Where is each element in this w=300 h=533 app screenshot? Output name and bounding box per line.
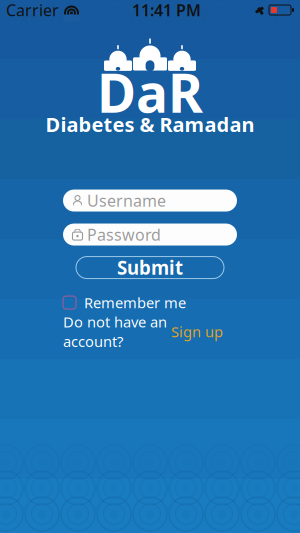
button[interactable]: Remember me [63,294,237,312]
staticText: Sign up [171,322,223,341]
button[interactable]: Username [63,190,237,212]
staticText: Remember me [84,293,186,312]
button[interactable]: Sign up [171,322,223,341]
staticText: Do not have an account? [63,312,167,351]
button[interactable]: Password [63,224,237,246]
staticText: Carrier [6,0,59,21]
staticText: Submit [117,255,183,280]
button[interactable]: Submit [76,257,224,279]
staticText: DaR [97,57,203,127]
staticText: Diabetes & Ramadan [45,111,254,138]
staticText: Password [87,224,161,245]
staticText: Username [87,190,166,211]
staticText: 11:41 PM [132,0,201,21]
